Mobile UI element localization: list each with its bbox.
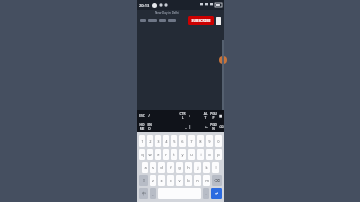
button[interactable]: ■	[218, 110, 223, 121]
button[interactable]: PGUP	[209, 110, 218, 121]
button[interactable]: a	[142, 162, 148, 173]
button[interactable]: 1	[139, 135, 145, 147]
staticText: 6	[181, 139, 184, 144]
staticText: 20:13	[139, 3, 150, 8]
button[interactable]: END	[146, 121, 153, 132]
button[interactable]: i	[197, 149, 204, 160]
button[interactable]: 2	[147, 135, 153, 147]
staticText: 5	[173, 139, 176, 144]
button[interactable]: Notifications	[216, 17, 221, 25]
staticText: ⌫	[214, 178, 220, 183]
staticText: ←	[205, 125, 208, 129]
button[interactable]: PGDN	[209, 121, 218, 132]
button[interactable]: 7	[188, 135, 195, 147]
button[interactable]: Language	[139, 188, 148, 199]
button[interactable]: q	[139, 149, 145, 160]
button[interactable]: ←	[204, 121, 209, 132]
button[interactable]: Enter	[211, 188, 222, 199]
button[interactable]: /	[146, 110, 151, 121]
button[interactable]: :	[187, 110, 191, 121]
staticText: v	[178, 178, 181, 183]
staticText: |	[189, 125, 191, 129]
button[interactable]: w	[147, 149, 153, 160]
button[interactable]: g	[176, 162, 183, 173]
button[interactable]: Shift	[139, 175, 148, 186]
staticText: ALT	[203, 112, 208, 120]
button[interactable]: f	[167, 162, 174, 173]
button[interactable]: o	[206, 149, 213, 160]
staticText: x	[160, 178, 163, 183]
button[interactable]: l	[212, 162, 219, 173]
button[interactable]: |	[188, 121, 192, 132]
staticText: 2	[149, 139, 152, 144]
button[interactable]: h	[185, 162, 192, 173]
staticText: New Day in Delhi	[155, 11, 179, 15]
button[interactable]: u	[188, 149, 195, 160]
staticText: ESC	[139, 114, 145, 118]
button[interactable]: z	[150, 175, 156, 186]
button[interactable]: 4	[163, 135, 169, 147]
staticText: t	[173, 152, 175, 157]
button[interactable]: d	[158, 162, 165, 173]
staticText: 9	[208, 139, 211, 144]
button[interactable]: c	[167, 175, 174, 186]
staticText: w	[148, 152, 152, 157]
staticText: PGDN	[210, 123, 217, 131]
button[interactable]: s	[150, 162, 156, 173]
button[interactable]: j	[194, 162, 201, 173]
button[interactable]: Profile	[219, 56, 227, 64]
staticText: b	[187, 178, 190, 183]
staticText: k	[205, 165, 208, 170]
button[interactable]: 5	[171, 135, 177, 147]
button[interactable]: SUBSCRIBE	[188, 16, 214, 25]
button[interactable]: CTRL	[178, 110, 187, 121]
staticText: SUBSCRIBE	[191, 18, 211, 23]
staticText: n	[196, 178, 199, 183]
staticText: s	[152, 165, 154, 170]
staticText: r	[165, 152, 167, 157]
button[interactable]: ALT	[202, 110, 209, 121]
staticText: ↵	[215, 191, 219, 196]
button[interactable]: 0	[215, 135, 222, 147]
staticText: ⌫	[219, 125, 222, 129]
staticText: p	[217, 152, 220, 157]
staticText: /	[148, 114, 150, 118]
button[interactable]: k	[203, 162, 210, 173]
button[interactable]: b	[185, 175, 192, 186]
staticText: 8	[199, 139, 202, 144]
staticText: 中	[142, 191, 146, 196]
staticText: CTRL	[179, 112, 186, 120]
button[interactable]: p	[215, 149, 222, 160]
staticText: q	[141, 152, 144, 157]
staticText: HOME	[139, 123, 145, 131]
staticText: 4	[165, 139, 168, 144]
staticText: _	[185, 125, 187, 129]
button[interactable]: ESC	[138, 110, 146, 121]
button[interactable]: x	[158, 175, 165, 186]
staticText: ■	[219, 114, 222, 118]
button[interactable]: Backspace	[212, 175, 222, 186]
button[interactable]: ,	[150, 188, 156, 199]
button[interactable]: _	[184, 121, 188, 132]
button[interactable]: n	[194, 175, 201, 186]
button[interactable]: 8	[197, 135, 204, 147]
button[interactable]: y	[179, 149, 186, 160]
button[interactable]: 9	[206, 135, 213, 147]
button[interactable]: r	[163, 149, 169, 160]
button[interactable]: t	[171, 149, 177, 160]
button[interactable]: HOME	[138, 121, 146, 132]
staticText: c	[170, 178, 172, 183]
button[interactable]: e	[155, 149, 161, 160]
staticText: a	[144, 165, 147, 170]
button[interactable]: m	[203, 175, 210, 186]
button[interactable]: 3	[155, 135, 161, 147]
button[interactable]: ⌫	[218, 121, 223, 132]
button[interactable]: v	[176, 175, 183, 186]
staticText: l	[215, 165, 217, 170]
button[interactable]: 6	[179, 135, 186, 147]
staticText: i	[200, 152, 202, 157]
staticText: u	[190, 152, 193, 157]
staticText: d	[160, 165, 163, 170]
